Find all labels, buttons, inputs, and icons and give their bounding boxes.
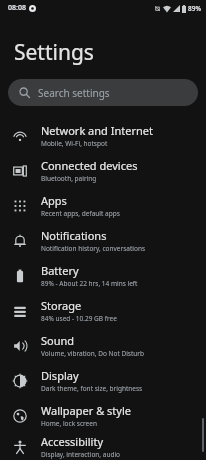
- staticText: 08:08: [8, 3, 26, 13]
- staticText: 84% used - 10.29 GB free: [41, 314, 117, 323]
- staticText: Search settings: [38, 86, 110, 100]
- staticText: Notifications: [41, 228, 107, 243]
- button[interactable]: Network and Internet: [0, 118, 206, 153]
- staticText: Notification history, conversations: [41, 244, 146, 253]
- staticText: Accessibility: [41, 434, 104, 449]
- staticText: Home, lock screen: [41, 419, 97, 428]
- button[interactable]: Apps: [0, 188, 206, 223]
- staticText: Connected devices: [41, 158, 138, 173]
- button[interactable]: Accessibility: [0, 433, 206, 460]
- button[interactable]: Search settings: [8, 79, 198, 106]
- staticText: Volume, vibration, Do Not Disturb: [41, 349, 145, 358]
- button[interactable]: Display: [0, 363, 206, 398]
- staticText: Storage: [41, 298, 82, 313]
- staticText: Network and Internet: [41, 123, 153, 138]
- staticText: Dark theme, font size, brightness: [41, 384, 143, 393]
- staticText: Bluetooth, pairing: [41, 174, 97, 183]
- staticText: Battery: [41, 263, 79, 278]
- button[interactable]: Storage: [0, 293, 206, 328]
- staticText: 89%: [188, 4, 201, 13]
- staticText: Settings: [14, 38, 94, 67]
- staticText: Apps: [41, 193, 67, 208]
- staticText: Display: [41, 368, 79, 383]
- staticText: Sound: [41, 333, 75, 348]
- button[interactable]: Battery: [0, 258, 206, 293]
- button[interactable]: Sound: [0, 328, 206, 363]
- staticText: 89% - About 22 hrs, 14 mins left: [41, 279, 138, 288]
- button[interactable]: Wallpaper & style: [0, 398, 206, 433]
- button[interactable]: Connected devices: [0, 153, 206, 188]
- staticText: Display, interaction, audio: [41, 450, 121, 459]
- staticText: Wallpaper & style: [41, 403, 131, 418]
- staticText: Mobile, Wi-Fi, hotspot: [41, 139, 108, 148]
- staticText: Recent apps, default apps: [41, 209, 120, 218]
- button[interactable]: Notifications: [0, 223, 206, 258]
